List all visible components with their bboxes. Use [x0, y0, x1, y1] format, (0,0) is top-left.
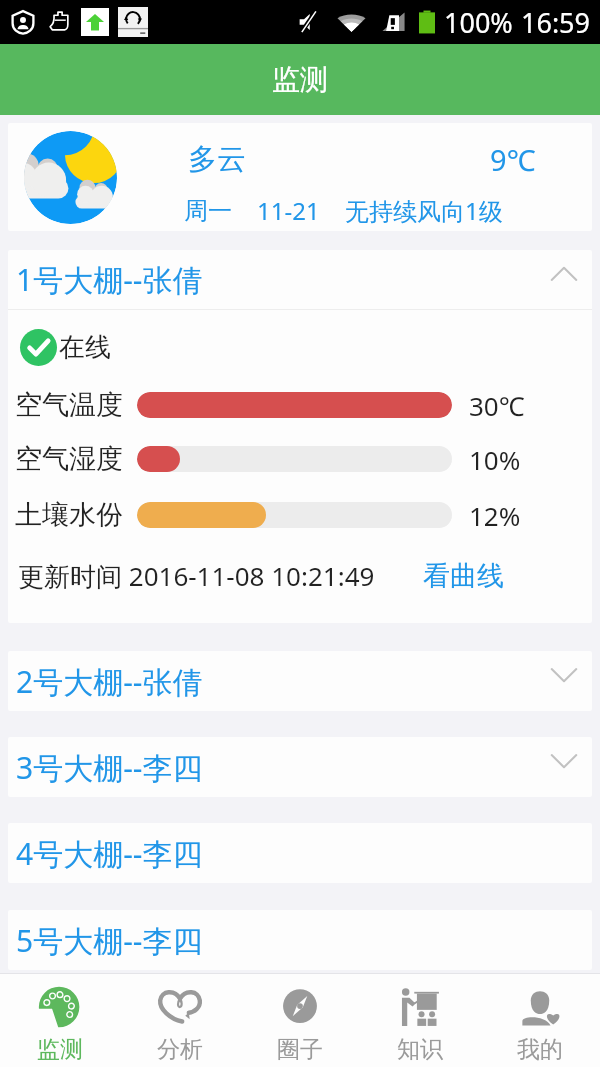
- staticText: 圈子: [277, 1035, 323, 1064]
- button[interactable]: 5号大棚--李四: [8, 910, 592, 970]
- staticText: 周一: [184, 196, 232, 226]
- staticText: 在线: [59, 331, 111, 364]
- staticText: 看曲线: [423, 559, 504, 593]
- staticText: 空气湿度: [15, 442, 123, 476]
- button[interactable]: 4号大棚--李四: [8, 823, 592, 883]
- staticText: 3号大棚--李四: [16, 747, 203, 788]
- button[interactable]: 看曲线: [423, 559, 504, 593]
- other: Expand: [550, 747, 578, 775]
- button[interactable]: 分析: [120, 974, 240, 1067]
- staticText: 监测: [37, 1035, 83, 1064]
- button[interactable]: 知识: [360, 974, 480, 1067]
- button[interactable]: 多云: [8, 123, 592, 231]
- button[interactable]: 我的: [480, 974, 600, 1067]
- staticText: 更新时间 2016-11-08 10:21:49: [18, 558, 375, 594]
- button[interactable]: 1号大棚--张倩: [8, 250, 592, 309]
- staticText: 11-21: [257, 194, 320, 227]
- staticText: 分析: [157, 1035, 203, 1064]
- staticText: 我的: [517, 1035, 563, 1064]
- button[interactable]: 监测: [0, 974, 120, 1067]
- staticText: 4号大棚--李四: [16, 833, 203, 874]
- staticText: 100%: [444, 4, 513, 41]
- staticText: 空气温度: [15, 388, 123, 422]
- button[interactable]: 2号大棚--张倩: [8, 651, 592, 711]
- staticText: 1号大棚--张倩: [16, 259, 203, 300]
- other: Expand: [550, 661, 578, 689]
- staticText: 16:59: [521, 4, 591, 41]
- staticText: 多云: [188, 141, 246, 178]
- staticText: 无持续风向1级: [345, 194, 503, 227]
- staticText: 5号大棚--李四: [16, 920, 203, 961]
- button[interactable]: 圈子: [240, 974, 360, 1067]
- other: Collapse: [550, 260, 578, 288]
- staticText: 知识: [397, 1035, 443, 1064]
- staticText: 监测: [272, 62, 328, 97]
- staticText: 30℃: [469, 388, 525, 423]
- staticText: 10%: [469, 442, 521, 477]
- staticText: 2号大棚--张倩: [16, 661, 203, 702]
- staticText: 土壤水份: [15, 498, 123, 532]
- button[interactable]: 3号大棚--李四: [8, 737, 592, 797]
- staticText: 9℃: [490, 140, 536, 179]
- staticText: 12%: [469, 498, 521, 533]
